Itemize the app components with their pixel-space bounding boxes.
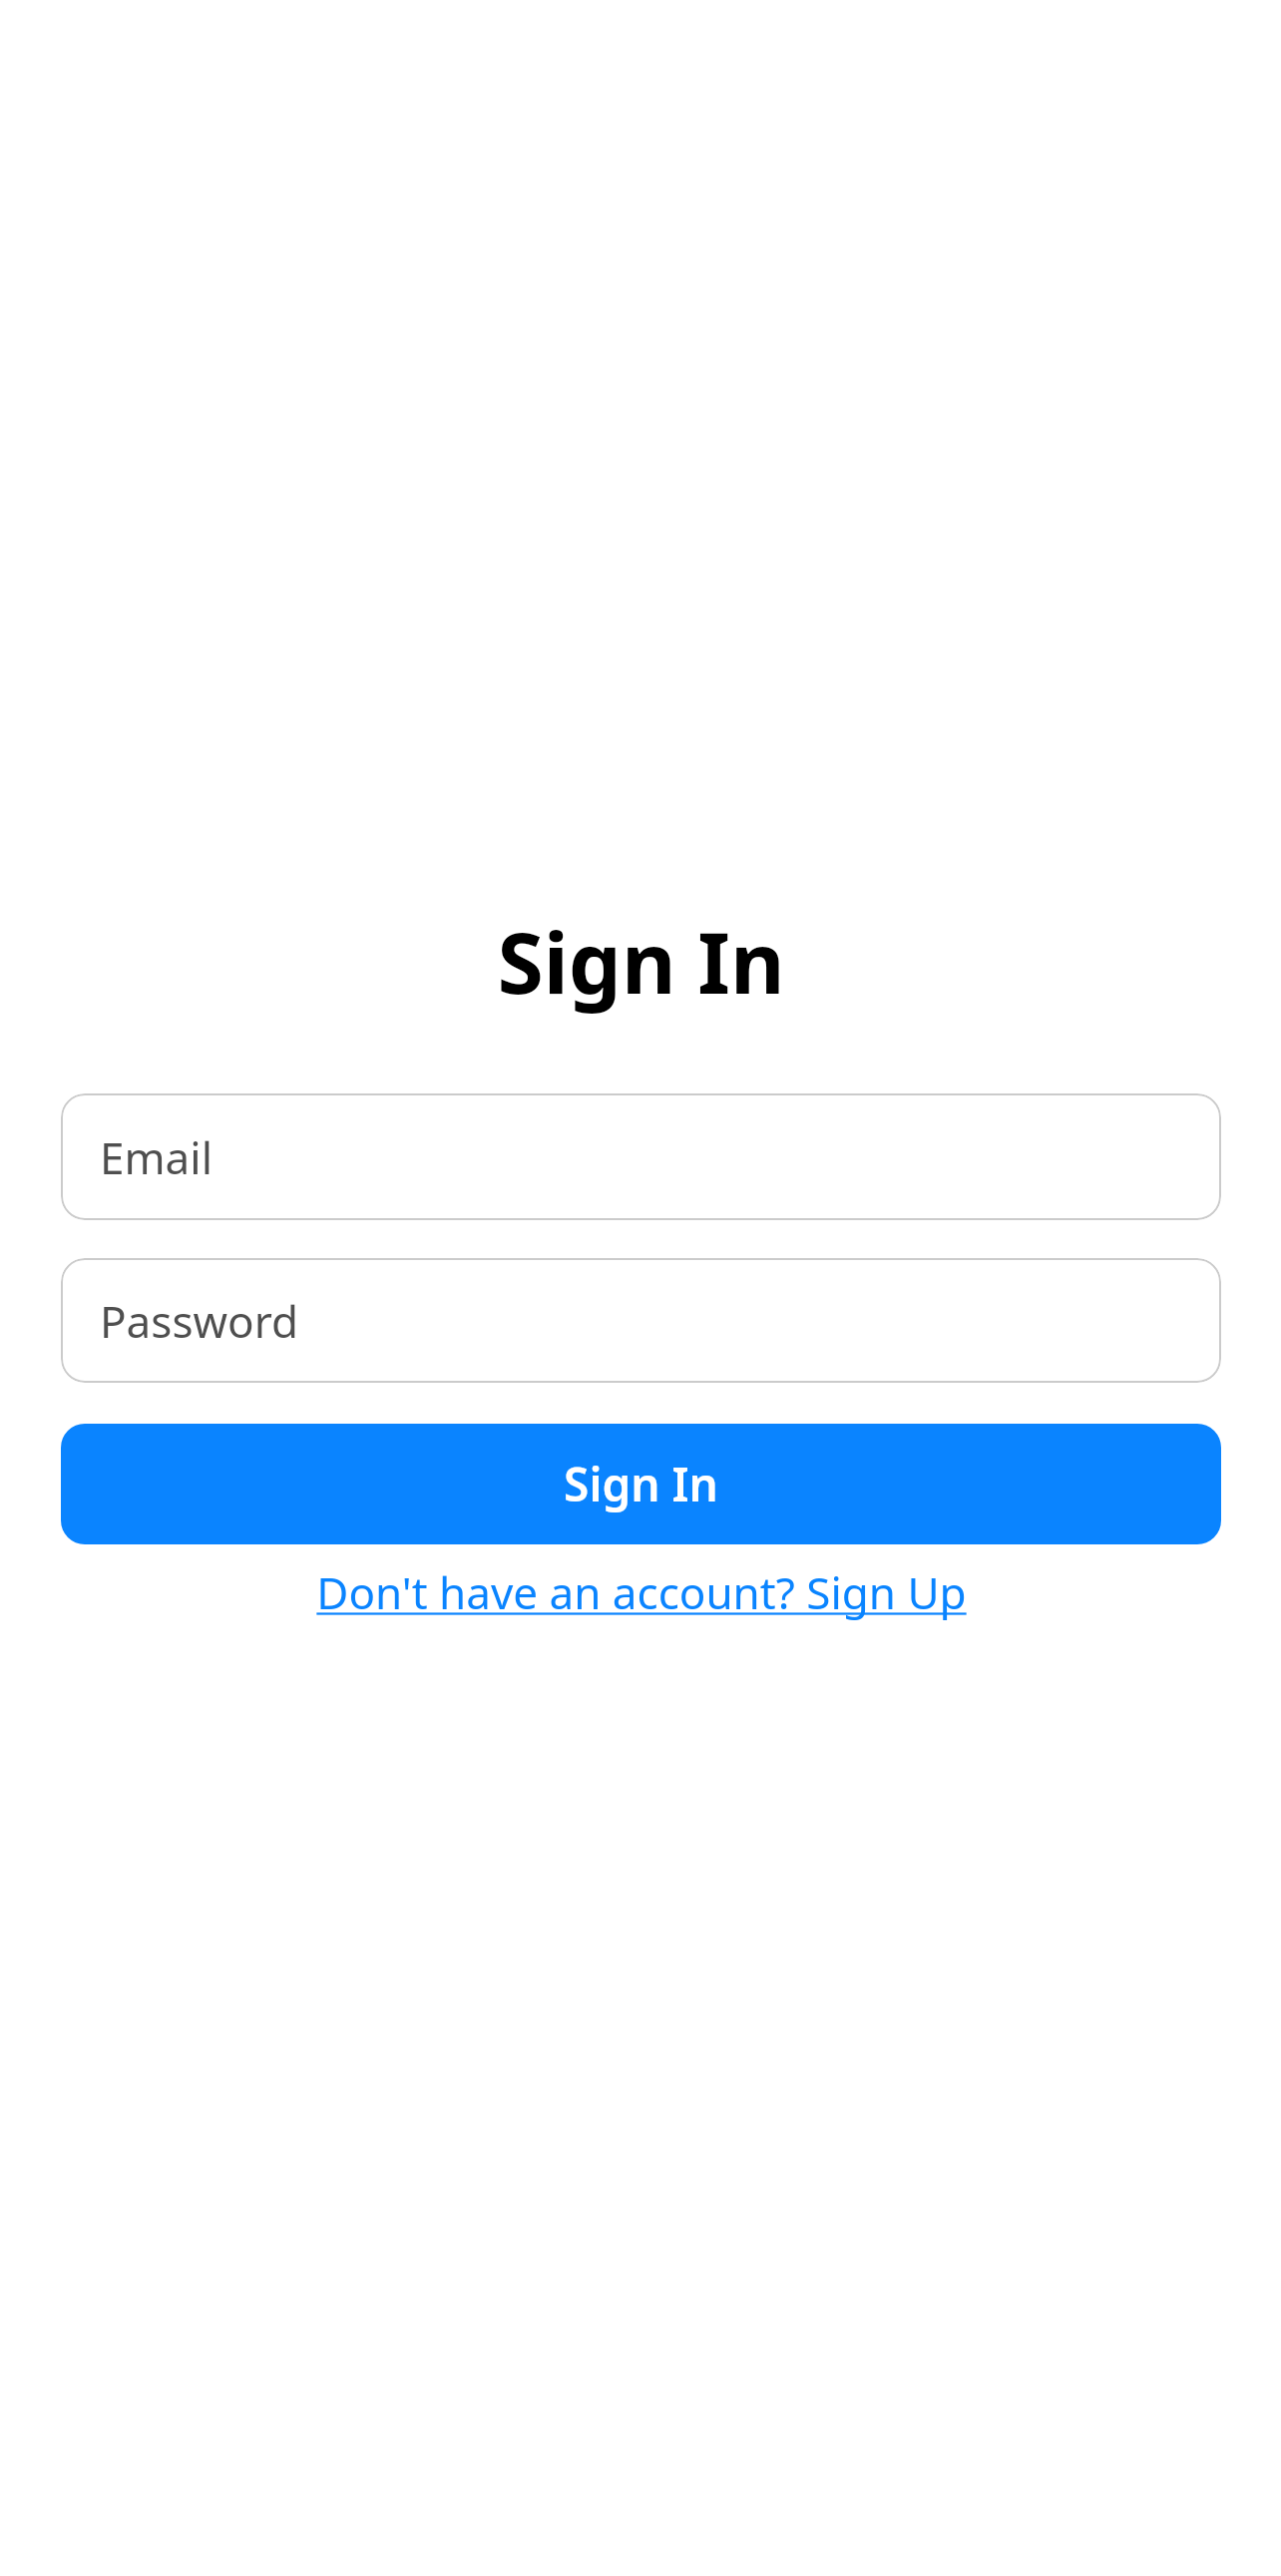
button[interactable]: Password: [61, 1258, 1221, 1383]
staticText: Password: [100, 1291, 299, 1351]
staticText: Email: [100, 1127, 213, 1187]
staticText: Sign In: [497, 904, 785, 1018]
button[interactable]: Email: [61, 1093, 1221, 1220]
staticText: Sign In: [564, 1453, 718, 1515]
button[interactable]: Don't have an account? Sign Up: [61, 1544, 1221, 1640]
staticText: Don't have an account? Sign Up: [316, 1562, 967, 1622]
button[interactable]: Sign In: [61, 1424, 1221, 1544]
